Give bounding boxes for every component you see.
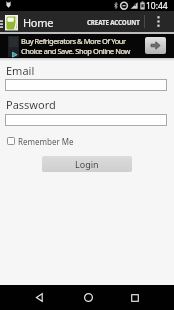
button[interactable] — [5, 114, 167, 126]
button[interactable] — [121, 285, 149, 310]
staticText: Buy Refrigerators & More Of Your — [21, 36, 126, 46]
staticText: Password — [6, 97, 56, 112]
button[interactable]: Remember Me — [5, 134, 75, 148]
button[interactable] — [74, 285, 102, 310]
staticText: CREATE ACCOUNT — [87, 18, 140, 26]
button[interactable] — [145, 37, 166, 54]
button[interactable]: CREATE ACCOUNT — [84, 11, 143, 32]
staticText: Login — [75, 158, 99, 170]
staticText: 10:44 — [146, 0, 168, 12]
button[interactable]: Buy Refrigerators & More Of Your — [0, 34, 174, 58]
staticText: Home — [23, 15, 54, 30]
button[interactable] — [150, 11, 167, 32]
button[interactable]: Login — [42, 156, 132, 172]
staticText: Email — [6, 63, 35, 78]
button[interactable] — [25, 285, 53, 310]
staticText: Remember Me — [18, 136, 74, 147]
button[interactable] — [5, 79, 167, 91]
staticText: Choice and Save. Shop Online Now — [21, 46, 130, 56]
